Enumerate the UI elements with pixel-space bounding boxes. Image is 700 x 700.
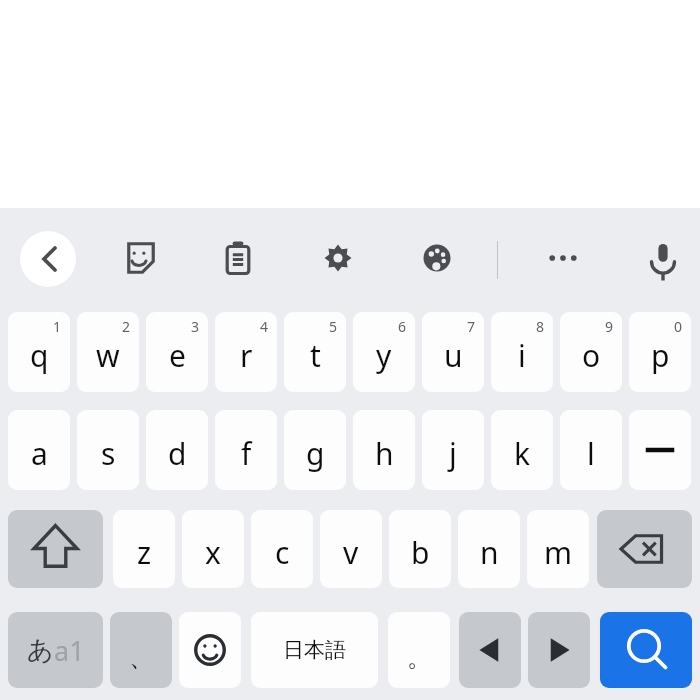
- button[interactable]: e: [146, 312, 208, 392]
- button[interactable]: i: [491, 312, 553, 392]
- staticText: p: [651, 335, 670, 376]
- button[interactable]: Switch input mode: [8, 612, 103, 688]
- staticText: h: [375, 433, 394, 474]
- button[interactable]: z: [113, 510, 175, 588]
- button[interactable]: f: [215, 410, 277, 490]
- staticText: 6: [398, 317, 407, 336]
- staticText: 2: [122, 317, 131, 336]
- staticText: j: [449, 433, 457, 474]
- staticText: 8: [536, 317, 545, 336]
- staticText: r: [240, 335, 253, 376]
- button[interactable]: w: [77, 312, 139, 392]
- button[interactable]: o: [560, 312, 622, 392]
- staticText: y: [376, 335, 392, 376]
- button[interactable]: p: [629, 312, 691, 392]
- button[interactable]: g: [284, 410, 346, 490]
- staticText: l: [587, 433, 595, 474]
- staticText: c: [275, 532, 290, 573]
- button[interactable]: q: [8, 312, 70, 392]
- button[interactable]: k: [491, 410, 553, 490]
- button[interactable]: m: [527, 510, 589, 588]
- staticText: 4: [260, 317, 269, 336]
- staticText: a1: [54, 632, 85, 669]
- button[interactable]: b: [389, 510, 451, 588]
- button[interactable]: Stickers: [112, 231, 166, 285]
- button[interactable]: 、: [110, 612, 172, 688]
- staticText: n: [480, 532, 499, 573]
- button[interactable]: Clipboard: [211, 231, 265, 285]
- button[interactable]: Shift: [8, 510, 103, 588]
- staticText: s: [101, 433, 116, 474]
- button[interactable]: x: [182, 510, 244, 588]
- button[interactable]: y: [353, 312, 415, 392]
- button[interactable]: Backspace: [597, 510, 692, 588]
- button[interactable]: c: [251, 510, 313, 588]
- staticText: k: [514, 433, 531, 474]
- staticText: m: [544, 532, 573, 573]
- button[interactable]: n: [458, 510, 520, 588]
- staticText: v: [343, 532, 359, 573]
- button[interactable]: Search: [600, 612, 692, 688]
- button[interactable]: Cursor left: [459, 612, 521, 688]
- staticText: z: [137, 532, 152, 573]
- staticText: e: [169, 335, 186, 376]
- button[interactable]: 。: [388, 612, 450, 688]
- staticText: 0: [674, 317, 683, 336]
- staticText: u: [444, 335, 463, 376]
- staticText: d: [168, 433, 187, 474]
- button[interactable]: u: [422, 312, 484, 392]
- staticText: f: [241, 433, 252, 474]
- staticText: o: [582, 335, 601, 376]
- button[interactable]: Back: [20, 231, 76, 287]
- button[interactable]: Voice input: [636, 231, 690, 285]
- staticText: 日本語: [283, 637, 346, 663]
- staticText: t: [310, 335, 321, 376]
- staticText: b: [411, 532, 430, 573]
- button[interactable]: s: [77, 410, 139, 490]
- staticText: 1: [53, 317, 62, 336]
- staticText: g: [306, 433, 325, 474]
- button[interactable]: Cursor right: [528, 612, 590, 688]
- button[interactable]: 日本語: [251, 612, 378, 688]
- button[interactable]: j: [422, 410, 484, 490]
- staticText: x: [205, 532, 221, 573]
- staticText: あ: [27, 634, 54, 667]
- button[interactable]: a: [8, 410, 70, 490]
- staticText: q: [30, 335, 49, 376]
- staticText: a: [31, 433, 48, 474]
- button[interactable]: More options: [536, 231, 590, 285]
- staticText: 9: [605, 317, 614, 336]
- staticText: w: [96, 335, 120, 376]
- staticText: i: [518, 335, 526, 376]
- button[interactable]: Themes: [410, 231, 464, 285]
- staticText: 5: [329, 317, 338, 336]
- button[interactable]: Emoji: [179, 612, 241, 688]
- staticText: 。: [407, 642, 432, 673]
- button[interactable]: r: [215, 312, 277, 392]
- button[interactable]: t: [284, 312, 346, 392]
- button[interactable]: v: [320, 510, 382, 588]
- button[interactable]: h: [353, 410, 415, 490]
- button[interactable]: Settings: [311, 231, 365, 285]
- staticText: 7: [467, 317, 476, 336]
- button[interactable]: l: [560, 410, 622, 490]
- button[interactable]: Dash: [629, 410, 691, 490]
- staticText: 、: [129, 642, 154, 673]
- staticText: 3: [191, 317, 200, 336]
- button[interactable]: d: [146, 410, 208, 490]
